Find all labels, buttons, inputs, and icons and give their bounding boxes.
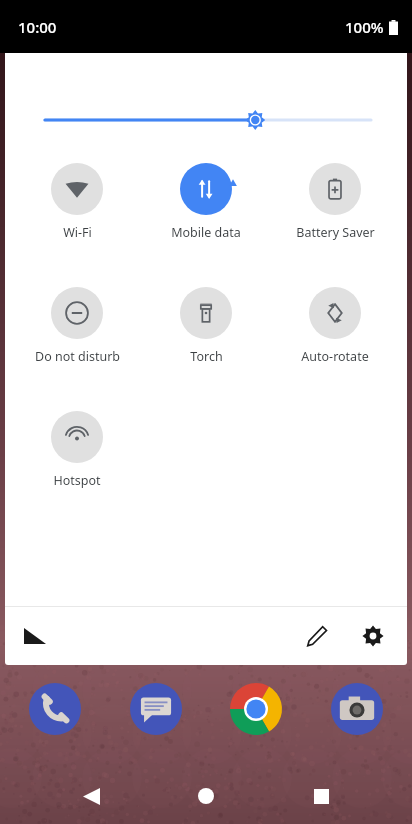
button[interactable]: Phone xyxy=(28,682,82,736)
staticText: Torch xyxy=(190,348,223,365)
staticText: Battery Saver xyxy=(296,224,375,241)
button[interactable]: Settings xyxy=(351,614,395,658)
staticText: Mobile data xyxy=(171,224,241,241)
staticText: Hotspot xyxy=(53,472,101,489)
button[interactable]: Auto-rotate xyxy=(279,287,391,365)
staticText: 100% xyxy=(345,17,384,37)
button[interactable]: Wi-Fi xyxy=(21,163,133,241)
button[interactable]: Page indicator xyxy=(13,614,57,658)
staticText: Wi-Fi xyxy=(63,224,92,241)
button[interactable]: Brightness xyxy=(5,103,407,137)
button[interactable]: Torch xyxy=(150,287,262,365)
button[interactable]: Back xyxy=(67,772,115,820)
button[interactable]: Edit xyxy=(295,614,339,658)
button[interactable]: Mobile data xyxy=(150,163,262,241)
button[interactable]: Chrome xyxy=(229,682,283,736)
staticText: Do not disturb xyxy=(35,348,120,365)
button[interactable]: Camera xyxy=(330,682,384,736)
staticText: Auto-rotate xyxy=(301,348,369,365)
staticText: 10:00 xyxy=(18,17,57,37)
button[interactable]: Recents xyxy=(297,772,345,820)
button[interactable]: Hotspot xyxy=(21,411,133,489)
button[interactable]: Battery Saver xyxy=(279,163,391,241)
button[interactable]: Do not disturb xyxy=(21,287,133,365)
button[interactable]: Messages xyxy=(129,682,183,736)
button[interactable]: Home xyxy=(182,772,230,820)
